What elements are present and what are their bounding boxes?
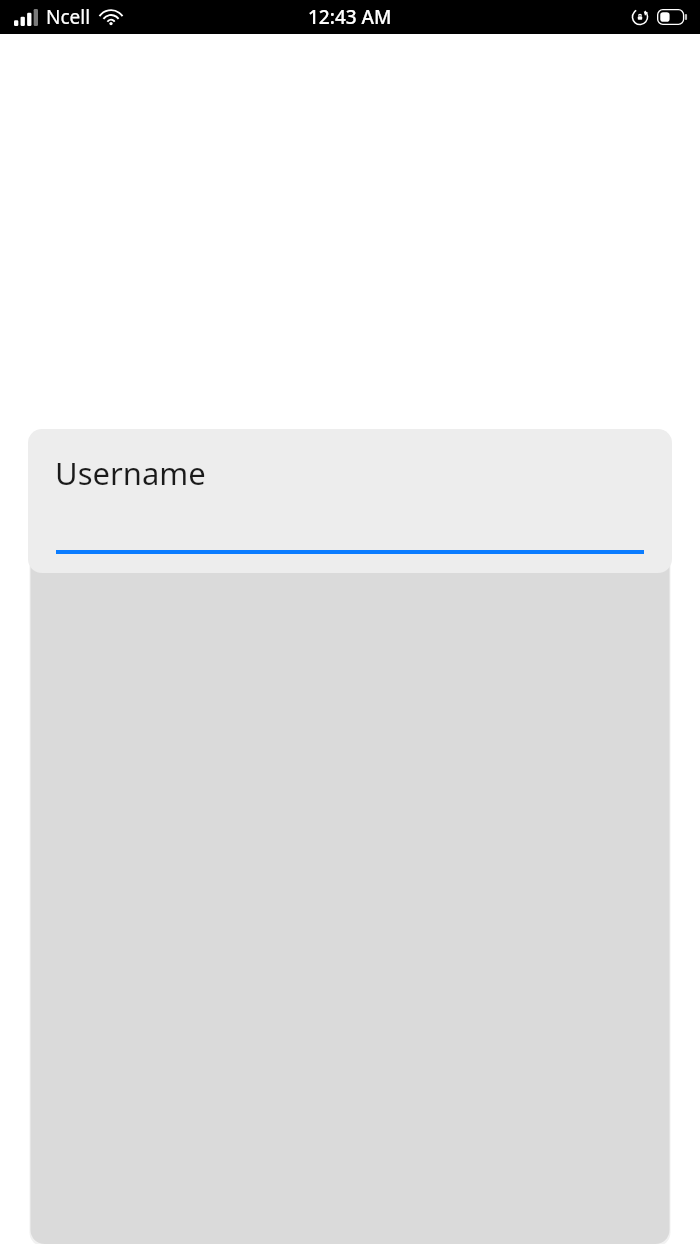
staticText: Ncell: [46, 4, 91, 30]
staticText: Username: [55, 452, 206, 494]
staticText: 12:43 AM: [308, 4, 392, 30]
button[interactable]: Username: [28, 429, 672, 573]
